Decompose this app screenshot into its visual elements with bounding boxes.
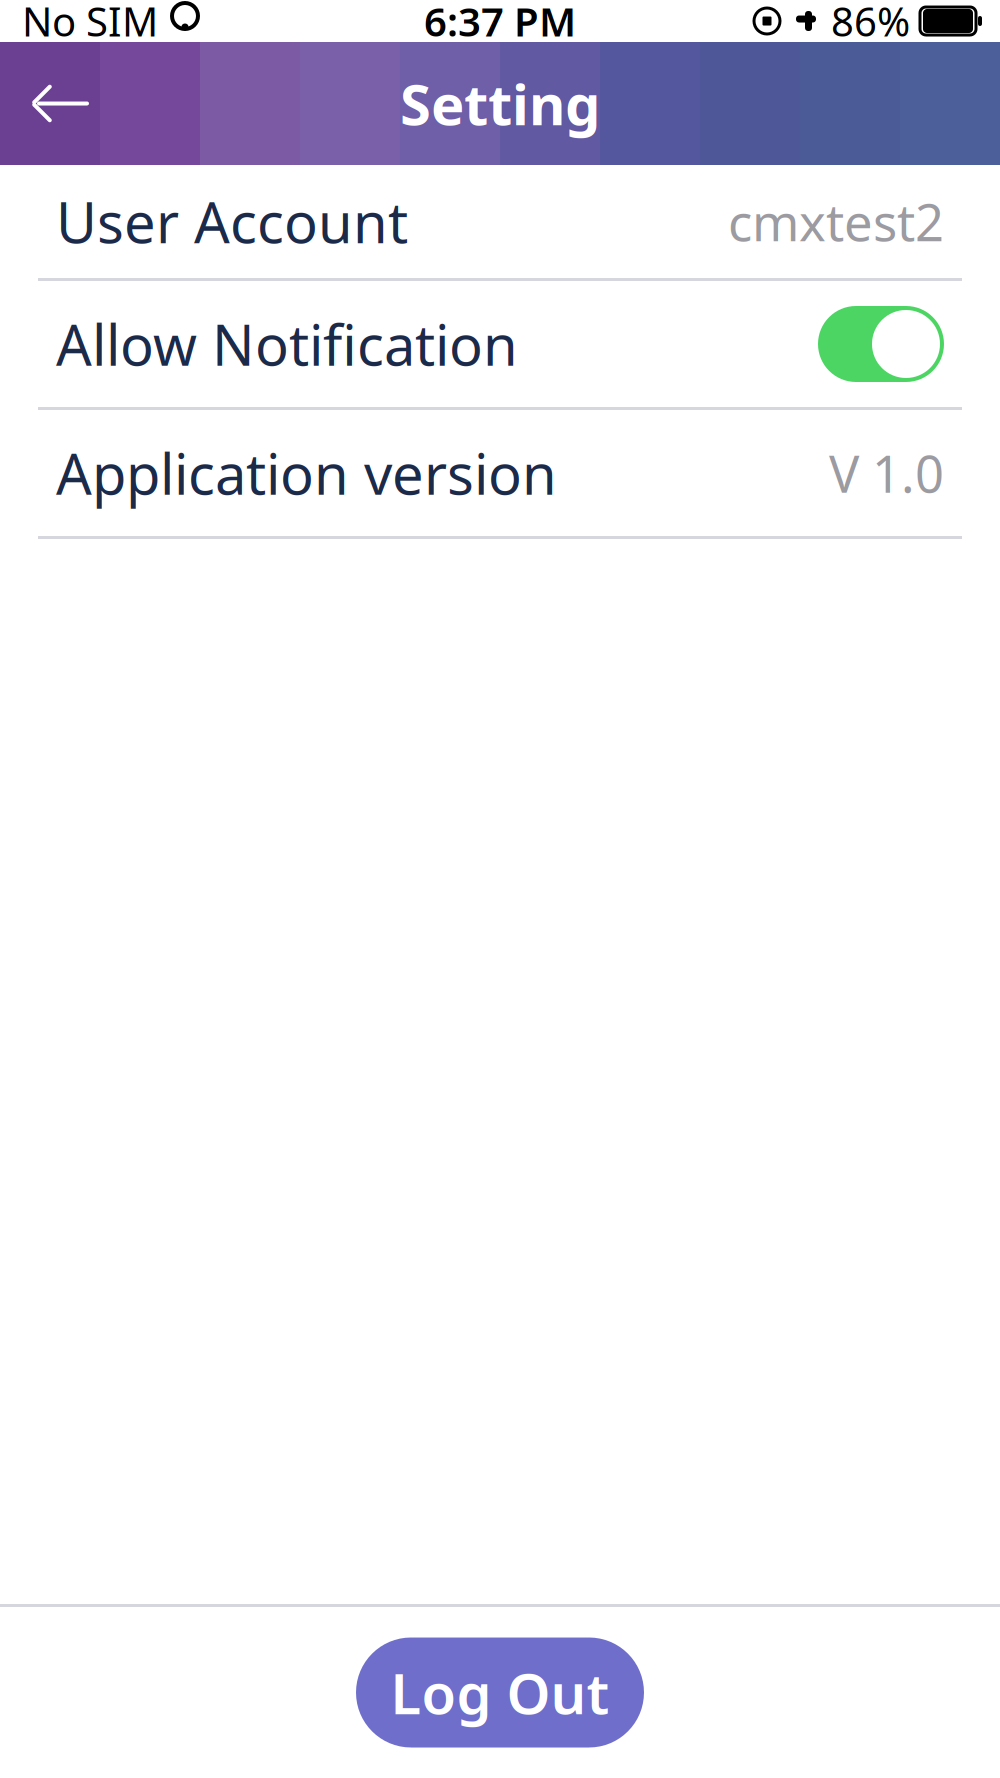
button[interactable]: Allow Notification — [0, 281, 1000, 407]
button[interactable]: User Account — [0, 165, 1000, 278]
staticText: Setting — [400, 66, 600, 141]
staticText: 6:37 PM — [424, 0, 576, 47]
staticText: No SIM — [22, 0, 158, 47]
staticText: 86% — [831, 0, 910, 47]
staticText: cmxtest2 — [728, 188, 944, 255]
staticText: Allow Notification — [56, 307, 518, 381]
button[interactable]: Log Out — [356, 1637, 644, 1747]
staticText: Application version — [56, 436, 557, 510]
button[interactable]: Back — [10, 55, 106, 151]
staticText: V 1.0 — [829, 439, 944, 507]
staticText: Log Out — [390, 1655, 609, 1730]
staticText: User Account — [56, 184, 408, 259]
